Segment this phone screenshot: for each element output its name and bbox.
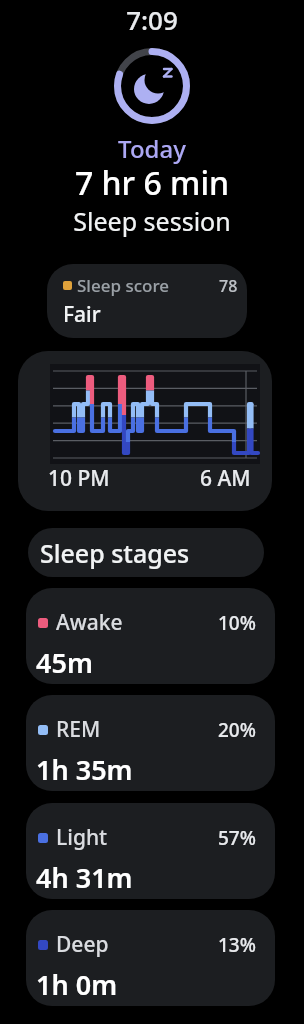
- staticText: 20%: [218, 717, 256, 743]
- button[interactable]: 10 PM: [18, 351, 272, 511]
- button[interactable]: Sleep stages: [28, 528, 264, 577]
- staticText: Awake: [56, 608, 123, 637]
- staticText: 45m: [36, 644, 93, 681]
- staticText: Light: [56, 823, 108, 852]
- staticText: 10%: [218, 610, 256, 636]
- staticText: 4h 31m: [36, 859, 133, 896]
- staticText: 57%: [218, 825, 256, 851]
- staticText: 13%: [218, 932, 256, 958]
- staticText: 7 hr 6 min: [0, 161, 304, 205]
- button[interactable]: Awake: [26, 588, 275, 684]
- staticText: 10 PM: [48, 464, 110, 493]
- button[interactable]: Sleep score: [47, 264, 247, 338]
- staticText: Fair: [63, 300, 101, 329]
- staticText: 1h 0m: [36, 966, 118, 1003]
- staticText: 7:09: [0, 2, 304, 37]
- staticText: Sleep session: [0, 204, 304, 238]
- staticText: Sleep score: [77, 274, 170, 297]
- button[interactable]: Deep: [26, 910, 275, 1006]
- staticText: Today: [0, 132, 304, 165]
- staticText: Sleep stages: [40, 536, 190, 570]
- staticText: 1h 35m: [36, 751, 133, 788]
- staticText: 6 AM: [200, 464, 251, 493]
- staticText: REM: [56, 715, 101, 744]
- staticText: 78: [219, 275, 238, 297]
- button[interactable]: REM: [26, 695, 275, 791]
- staticText: Deep: [56, 930, 109, 959]
- button[interactable]: Light: [26, 803, 275, 899]
